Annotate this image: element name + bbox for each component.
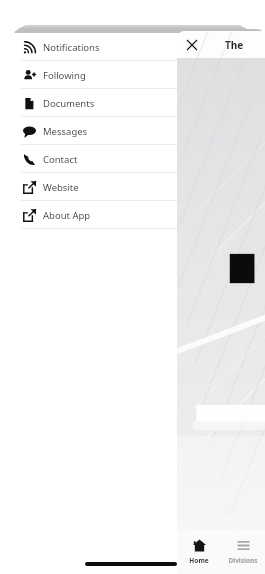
- staticText: Home: [189, 556, 209, 565]
- button[interactable]: Contact: [13, 145, 265, 173]
- staticText: About App: [43, 209, 91, 222]
- staticText: Documents: [43, 97, 95, 110]
- button[interactable]: Messages: [13, 117, 265, 145]
- staticText: Contact: [43, 153, 78, 166]
- staticText: The: [225, 38, 244, 52]
- button[interactable]: Notifications: [13, 33, 265, 61]
- button[interactable]: Website: [13, 173, 265, 201]
- button[interactable]: Home: [177, 530, 221, 574]
- staticText: Following: [43, 69, 86, 82]
- staticText: Website: [43, 181, 79, 194]
- button[interactable]: Following: [13, 61, 265, 89]
- button[interactable]: About App: [13, 201, 265, 229]
- staticText: Messages: [43, 125, 88, 138]
- button[interactable]: Divisions: [221, 530, 265, 574]
- button[interactable]: Documents: [13, 89, 265, 117]
- staticText: Divisions: [228, 556, 258, 565]
- staticText: Notifications: [43, 41, 100, 54]
- button[interactable]: Close: [183, 36, 201, 54]
